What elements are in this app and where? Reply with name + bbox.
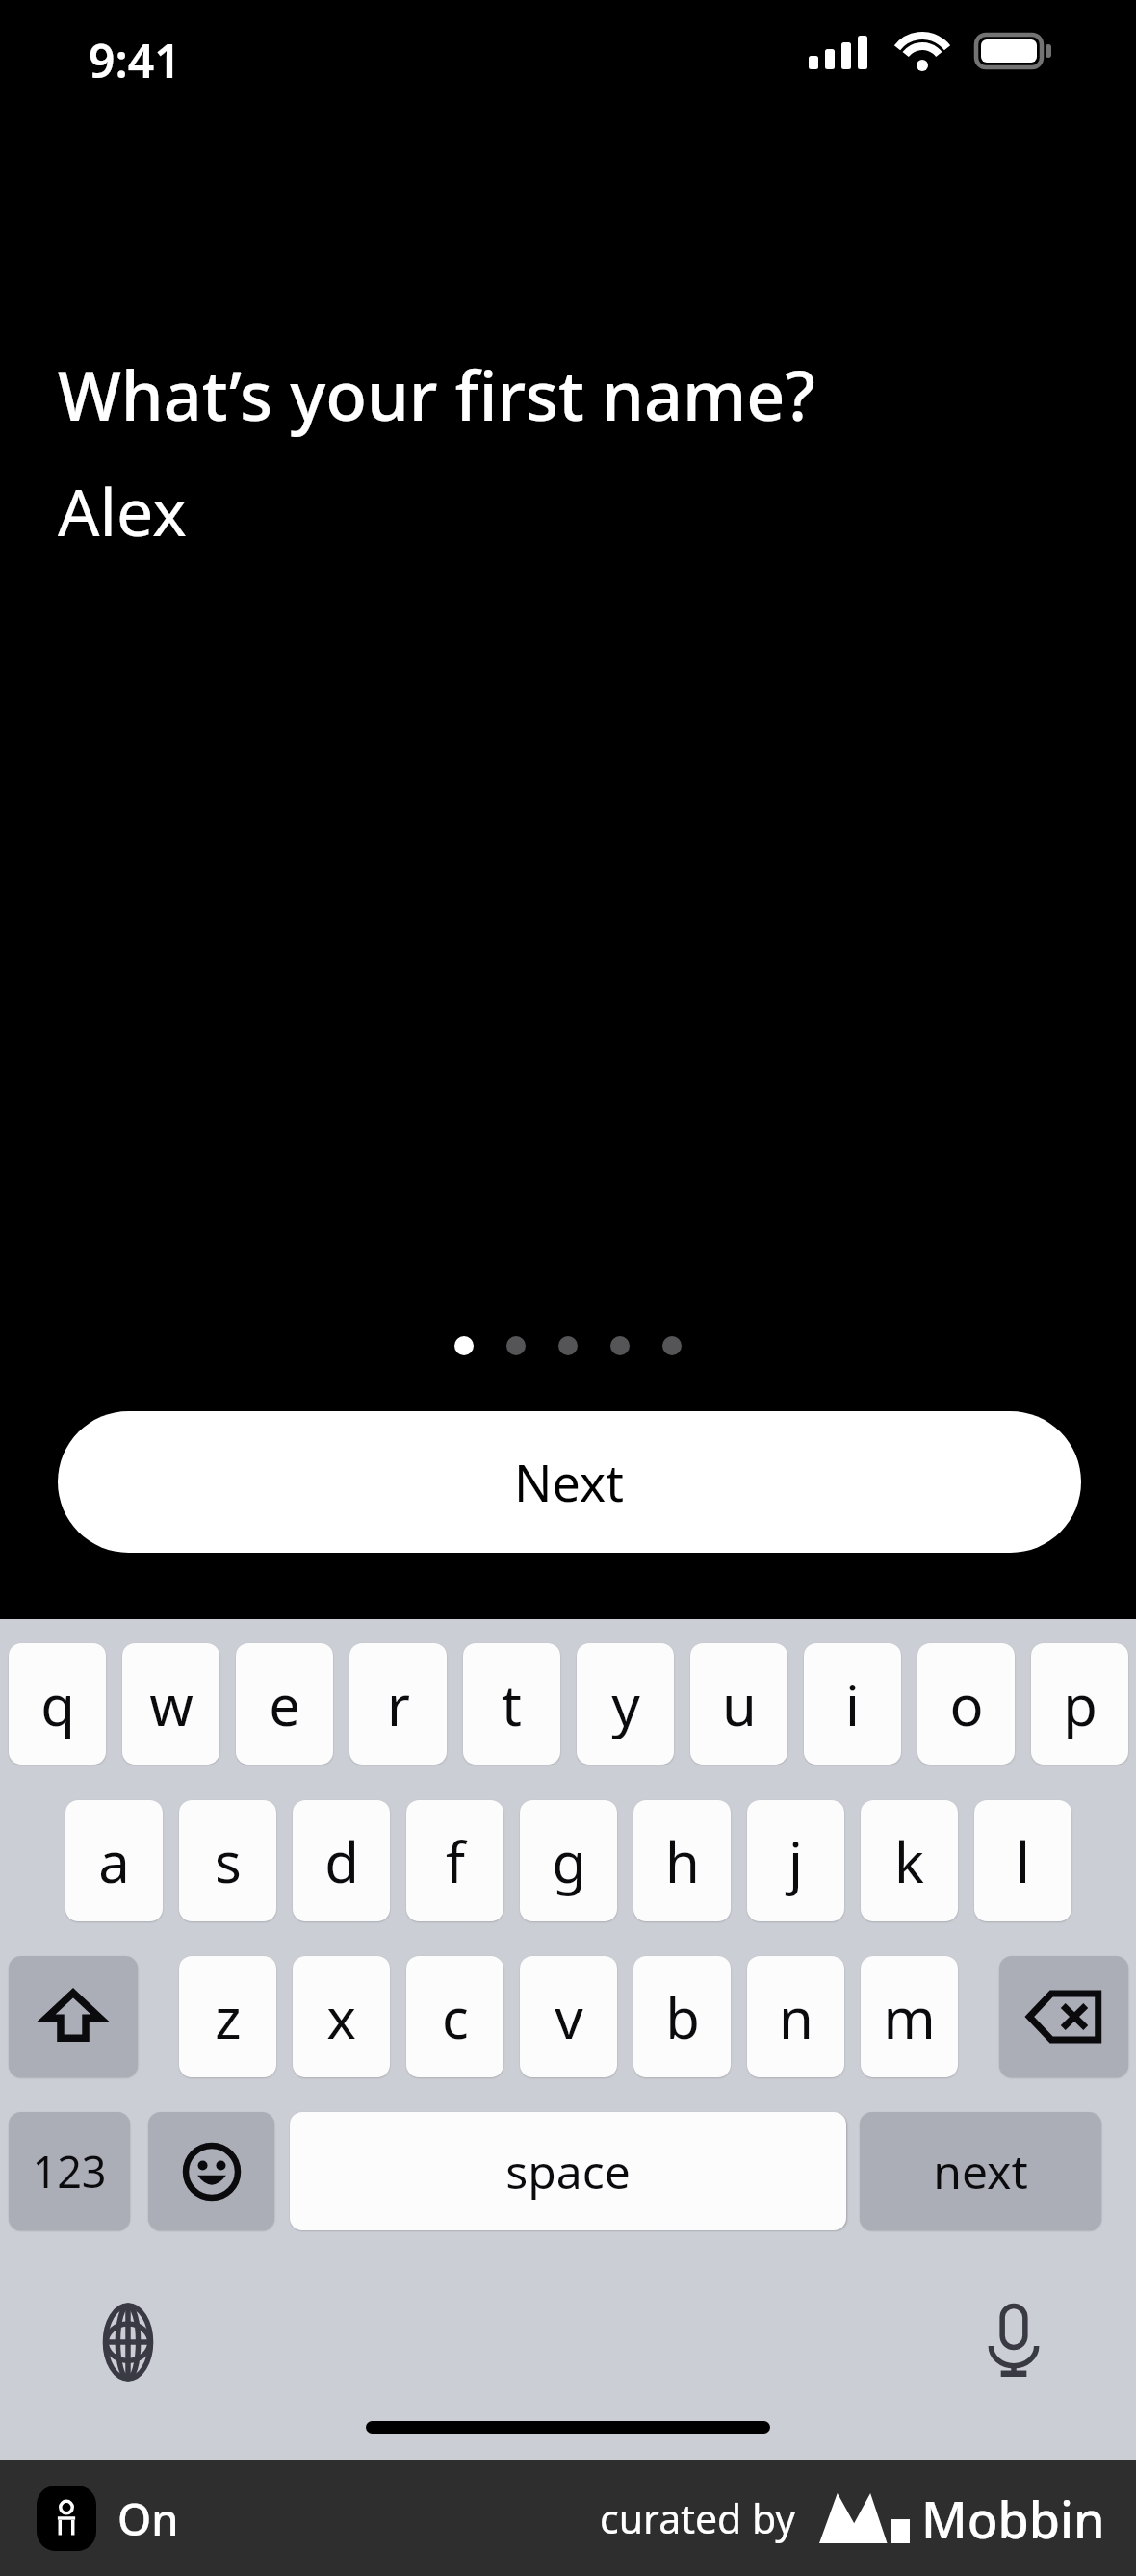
staticText: s: [215, 1823, 242, 1899]
staticText: w: [149, 1666, 194, 1742]
button[interactable]: Emoji: [148, 2112, 274, 2230]
staticText: Next: [514, 1448, 625, 1516]
staticText: On: [117, 2489, 179, 2548]
button[interactable]: f: [406, 1800, 503, 1921]
staticText: Alex: [58, 466, 187, 555]
button[interactable]: w: [122, 1643, 219, 1765]
staticText: c: [442, 1979, 469, 2055]
button[interactable]: 123: [9, 2112, 130, 2230]
button[interactable]: h: [633, 1800, 731, 1921]
button[interactable]: d: [293, 1800, 390, 1921]
staticText: Mobbin: [921, 2485, 1105, 2553]
button[interactable]: y: [577, 1643, 674, 1765]
staticText: r: [387, 1666, 410, 1742]
button[interactable]: Next: [58, 1411, 1081, 1553]
staticText: t: [502, 1666, 522, 1742]
button[interactable]: Shift: [9, 1956, 138, 2077]
button[interactable]: u: [690, 1643, 787, 1765]
staticText: z: [215, 1979, 242, 2055]
staticText: j: [788, 1823, 803, 1899]
staticText: k: [894, 1823, 924, 1899]
button[interactable]: t: [463, 1643, 560, 1765]
staticText: 123: [32, 2142, 107, 2201]
button[interactable]: e: [236, 1643, 333, 1765]
button[interactable]: Change keyboard: [87, 2301, 169, 2383]
staticText: o: [949, 1666, 984, 1742]
staticText: q: [40, 1666, 75, 1742]
button[interactable]: a: [65, 1800, 163, 1921]
button[interactable]: r: [349, 1643, 447, 1765]
staticText: l: [1016, 1823, 1030, 1899]
staticText: next: [933, 2140, 1028, 2202]
staticText: space: [505, 2140, 631, 2202]
button[interactable]: m: [861, 1956, 958, 2077]
button[interactable]: o: [917, 1643, 1015, 1765]
button[interactable]: next: [860, 2112, 1101, 2230]
staticText: b: [665, 1979, 700, 2055]
staticText: n: [779, 1979, 813, 2055]
button[interactable]: s: [179, 1800, 276, 1921]
button[interactable]: g: [520, 1800, 617, 1921]
button[interactable]: space: [290, 2112, 846, 2230]
staticText: e: [269, 1666, 300, 1742]
staticText: curated by: [600, 2491, 796, 2545]
staticText: g: [552, 1823, 586, 1899]
button[interactable]: Dictate: [972, 2299, 1055, 2382]
staticText: p: [1063, 1666, 1097, 1742]
button[interactable]: x: [293, 1956, 390, 2077]
button[interactable]: j: [747, 1800, 844, 1921]
staticText: h: [665, 1823, 700, 1899]
staticText: m: [883, 1979, 936, 2055]
button[interactable]: c: [406, 1956, 503, 2077]
staticText: 9:41: [89, 29, 181, 91]
button[interactable]: b: [633, 1956, 731, 2077]
button[interactable]: q: [9, 1643, 106, 1765]
staticText: d: [324, 1823, 359, 1899]
button[interactable]: p: [1031, 1643, 1128, 1765]
staticText: u: [722, 1666, 757, 1742]
staticText: i: [845, 1666, 860, 1742]
staticText: f: [446, 1823, 465, 1899]
staticText: x: [326, 1979, 356, 2055]
button[interactable]: z: [179, 1956, 276, 2077]
button[interactable]: k: [861, 1800, 958, 1921]
button[interactable]: v: [520, 1956, 617, 2077]
button[interactable]: l: [974, 1800, 1071, 1921]
button[interactable]: n: [747, 1956, 844, 2077]
button[interactable]: i: [804, 1643, 901, 1765]
staticText: v: [555, 1979, 583, 2055]
button[interactable]: Backspace: [999, 1956, 1128, 2077]
staticText: a: [98, 1823, 130, 1899]
staticText: What’s your first name?: [58, 348, 815, 440]
staticText: y: [611, 1666, 640, 1742]
